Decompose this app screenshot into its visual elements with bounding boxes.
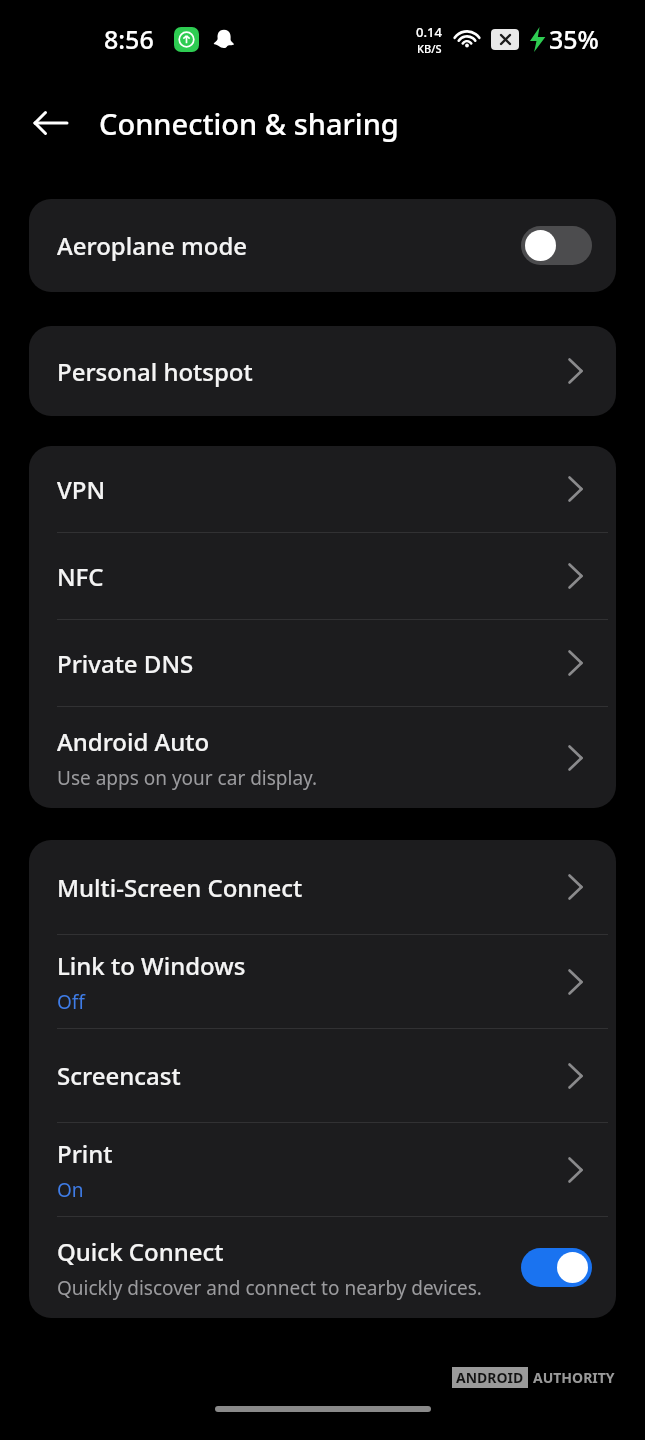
staticText: Android Auto — [57, 725, 210, 758]
button[interactable]: Aeroplane mode — [29, 199, 616, 292]
staticText: Private DNS — [57, 647, 194, 680]
button[interactable]: Link to Windows — [29, 935, 616, 1028]
button[interactable]: Multi-Screen Connect — [29, 840, 616, 934]
button[interactable]: Private DNS — [29, 620, 616, 706]
button[interactable]: Print — [29, 1123, 616, 1216]
staticText: Quickly discover and connect to nearby d… — [57, 1275, 482, 1301]
staticText: Use apps on your car display. — [57, 765, 318, 791]
staticText: Quick Connect — [57, 1235, 224, 1268]
button[interactable]: NFC — [29, 533, 616, 619]
staticText: Off — [57, 989, 85, 1015]
button[interactable]: Back — [22, 95, 78, 151]
staticText: 0.14 — [416, 23, 442, 41]
staticText: 8:56 — [104, 22, 154, 56]
button[interactable]: Screencast — [29, 1029, 616, 1122]
staticText: Link to Windows — [57, 949, 246, 982]
staticText: VPN — [57, 473, 106, 506]
staticText: Aeroplane mode — [57, 229, 248, 262]
staticText: NFC — [57, 560, 104, 593]
button[interactable]: Personal hotspot — [29, 326, 616, 416]
staticText: Personal hotspot — [57, 355, 253, 388]
staticText: ANDROID — [456, 1368, 524, 1387]
staticText: Connection & sharing — [99, 104, 399, 143]
button[interactable]: Quick Connect — [29, 1217, 616, 1318]
staticText: Multi-Screen Connect — [57, 871, 303, 904]
staticText: On — [57, 1177, 84, 1203]
staticText: 35% — [549, 22, 599, 56]
staticText: Print — [57, 1137, 113, 1170]
staticText: Screencast — [57, 1059, 181, 1092]
button[interactable]: VPN — [29, 446, 616, 532]
staticText: KB/S — [417, 41, 442, 56]
button[interactable]: Android Auto — [29, 707, 616, 808]
button[interactable]: Toggle off — [521, 226, 592, 265]
button[interactable]: Toggle on — [521, 1248, 592, 1287]
staticText: AUTHORITY — [533, 1368, 615, 1387]
